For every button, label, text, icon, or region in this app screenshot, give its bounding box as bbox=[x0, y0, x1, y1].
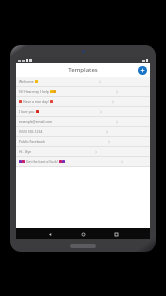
staticText: Hi! How may I help bbox=[19, 89, 49, 94]
button[interactable]: Back bbox=[46, 230, 54, 238]
button[interactable]: Public Facebook bbox=[16, 137, 150, 146]
staticText: Get the best of luck! bbox=[26, 159, 58, 164]
button[interactable]: Home bbox=[79, 230, 87, 238]
button[interactable]: Have a nice day! bbox=[16, 97, 150, 106]
button[interactable]: Hi! How may I help bbox=[16, 87, 150, 96]
staticText: Hi - Bye bbox=[19, 149, 32, 154]
staticText: Public Facebook bbox=[19, 139, 45, 144]
button[interactable]: Recents bbox=[112, 230, 120, 238]
button[interactable]: example@email.com bbox=[16, 117, 150, 126]
button[interactable]: I love you bbox=[16, 107, 150, 116]
button[interactable]: Welcome bbox=[16, 77, 150, 86]
staticText: Welcome bbox=[19, 79, 34, 84]
staticText: Templates bbox=[68, 66, 98, 74]
button[interactable]: Hi - Bye bbox=[16, 147, 150, 156]
staticText: (555) 555-1234 bbox=[19, 129, 43, 134]
staticText: I love you bbox=[19, 109, 35, 114]
staticText: example@email.com bbox=[19, 119, 53, 124]
staticText: Have a nice day! bbox=[23, 99, 49, 104]
button[interactable]: Get the best of luck! bbox=[16, 157, 150, 166]
button[interactable]: Add template bbox=[138, 66, 147, 75]
button[interactable]: (555) 555-1234 bbox=[16, 127, 150, 136]
